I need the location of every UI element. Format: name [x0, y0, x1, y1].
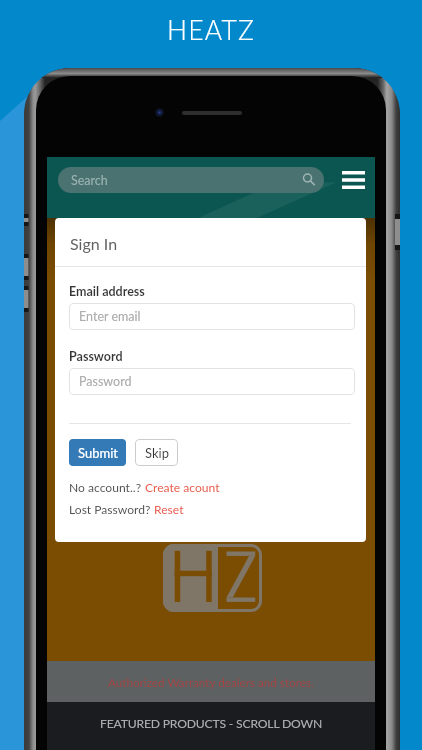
- button[interactable]: Enter email: [69, 303, 355, 330]
- staticText: Create acount: [145, 480, 220, 495]
- button[interactable]: Password: [69, 368, 355, 395]
- staticText: No account..?: [69, 480, 145, 495]
- button[interactable]: Open menu: [335, 165, 371, 195]
- staticText: HEATZ: [0, 14, 422, 46]
- staticText: Password: [79, 374, 132, 389]
- button[interactable]: Reset: [154, 502, 184, 517]
- staticText: Sign In: [70, 234, 118, 253]
- staticText: Skip: [145, 445, 169, 461]
- staticText: Search: [71, 173, 108, 188]
- button[interactable]: Search: [58, 167, 324, 193]
- staticText: Enter email: [79, 309, 141, 324]
- button[interactable]: Submit: [69, 439, 126, 466]
- staticText: Password: [69, 349, 123, 364]
- staticText: Authorized Warranty dealers and stores.: [108, 675, 314, 689]
- staticText: Lost Password?: [69, 502, 154, 517]
- staticText: Reset: [154, 502, 184, 517]
- staticText: Submit: [78, 445, 118, 461]
- staticText: FEATURED PRODUCTS - SCROLL DOWN: [100, 716, 323, 731]
- button[interactable]: Create acount: [145, 480, 220, 495]
- button[interactable]: Skip: [135, 439, 178, 466]
- staticText: Email address: [69, 284, 145, 299]
